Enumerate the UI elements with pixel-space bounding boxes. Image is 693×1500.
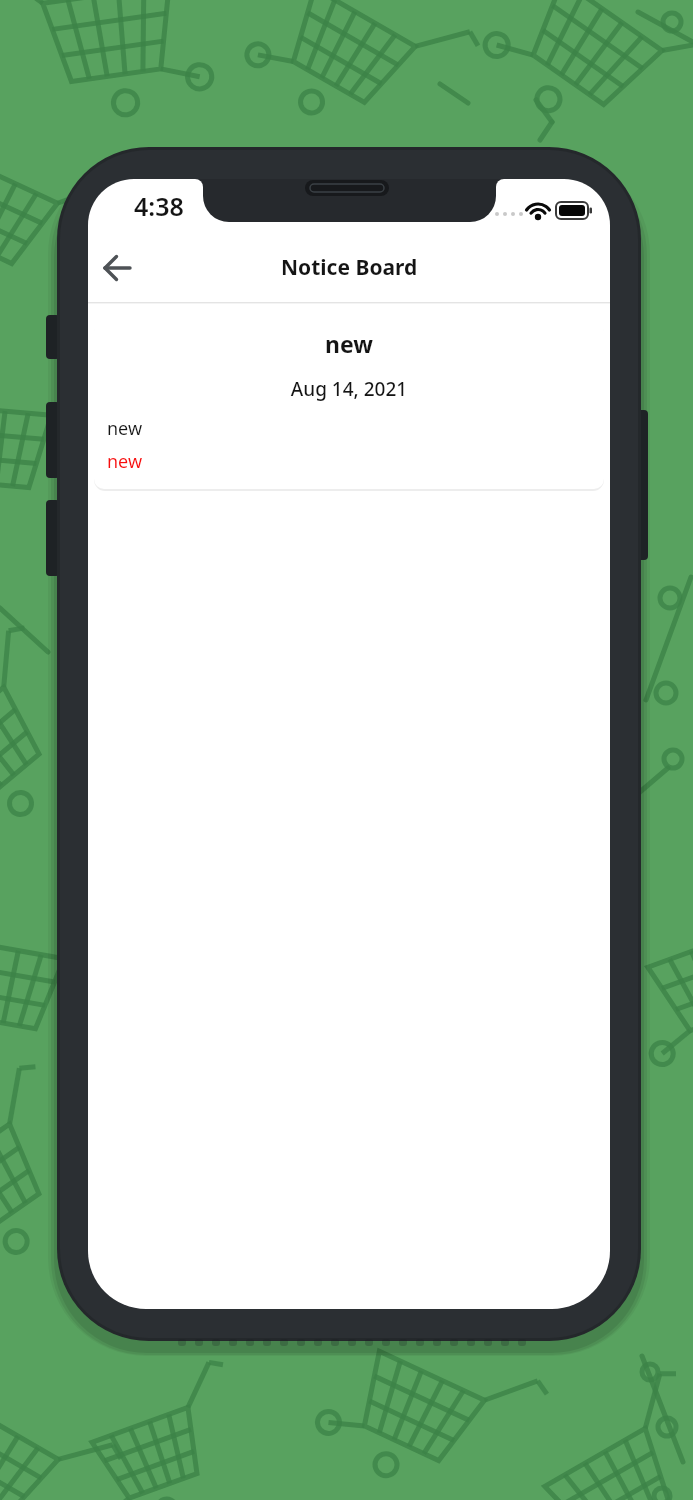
button[interactable]: new [94,321,604,489]
staticText: new [107,416,143,441]
staticText: 4:38 [134,189,184,223]
staticText: Aug 14, 2021 [107,376,591,402]
staticText: new [107,328,591,359]
staticText: new [107,449,143,474]
staticText: Notice Board [281,253,418,282]
button[interactable] [98,248,138,288]
